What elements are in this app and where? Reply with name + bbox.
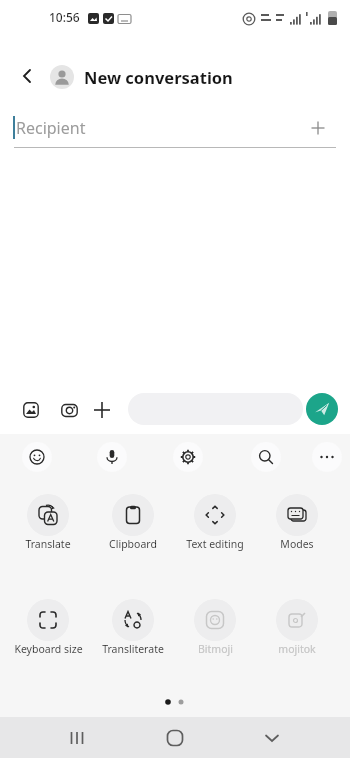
button[interactable] (27, 494, 69, 536)
button[interactable] (57, 717, 97, 758)
staticText: Text editing (186, 537, 244, 551)
staticText: Clipboard (109, 537, 157, 551)
staticText: mojitok (278, 642, 316, 656)
staticText: 10:56 (49, 9, 80, 25)
button[interactable] (194, 494, 236, 536)
button[interactable]: Recipient (0, 108, 350, 150)
staticText: Transliterate (102, 642, 164, 656)
staticText: Translate (25, 537, 71, 551)
button[interactable] (251, 442, 281, 472)
button[interactable] (312, 442, 342, 472)
button[interactable] (59, 400, 79, 420)
staticText: Recipient (16, 117, 86, 139)
button[interactable] (50, 65, 74, 89)
staticText: Bitmoji (198, 642, 233, 656)
staticText: Keyboard size (14, 642, 83, 656)
button[interactable] (252, 717, 292, 758)
button[interactable] (21, 400, 41, 420)
button[interactable] (112, 494, 154, 536)
button[interactable] (27, 599, 69, 641)
button[interactable] (276, 599, 318, 641)
button[interactable] (173, 442, 203, 472)
button[interactable] (306, 393, 338, 425)
staticText: New conversation (84, 66, 233, 88)
button[interactable] (155, 717, 195, 758)
button[interactable] (97, 442, 127, 472)
button[interactable] (22, 442, 52, 472)
button[interactable] (14, 63, 40, 89)
button[interactable] (92, 400, 112, 420)
button[interactable] (276, 494, 318, 536)
staticText: Modes (280, 537, 314, 551)
button[interactable] (194, 599, 236, 641)
button[interactable] (112, 599, 154, 641)
